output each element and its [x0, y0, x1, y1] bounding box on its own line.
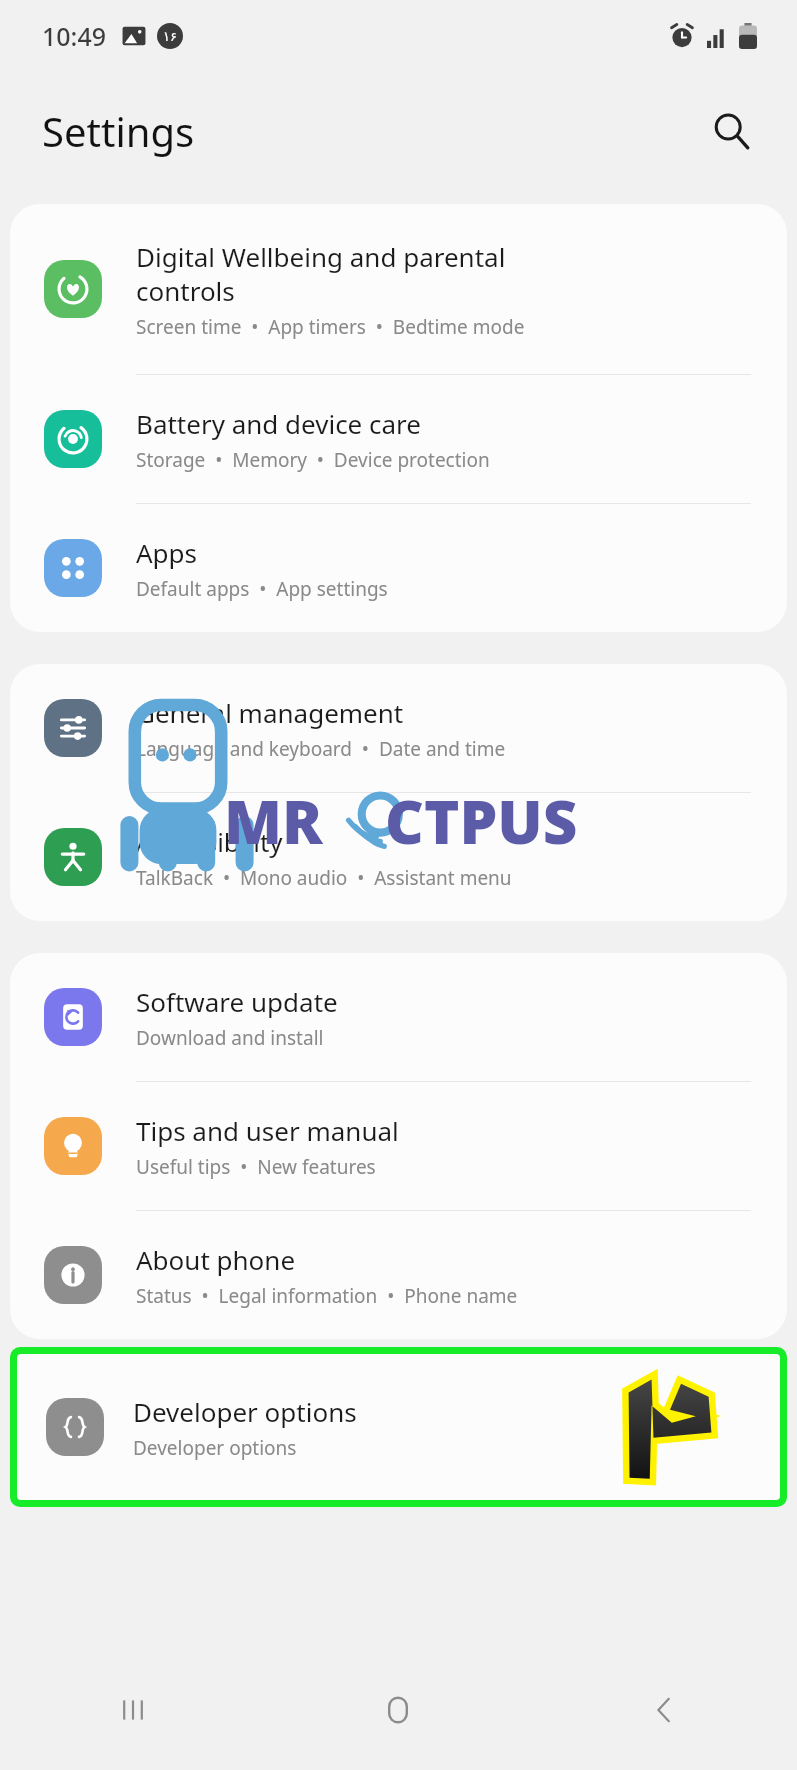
staticText: Default apps • App settings: [136, 576, 388, 602]
button[interactable]: General management: [10, 664, 787, 792]
staticText: Useful tips • New features: [136, 1154, 376, 1180]
button[interactable]: Recent apps: [0, 1650, 265, 1770]
button[interactable]: Software update: [10, 953, 787, 1081]
staticText: TalkBack • Mono audio • Assistant menu: [136, 865, 512, 891]
staticText: Settings: [42, 104, 195, 158]
staticText: Software update: [136, 984, 338, 1019]
staticText: Tips and user manual: [136, 1113, 399, 1148]
staticText: Developer options: [133, 1394, 357, 1429]
staticText: About phone: [136, 1242, 296, 1277]
button[interactable]: Apps: [10, 504, 787, 632]
button[interactable]: Digital Wellbeing and parental controls: [10, 204, 787, 374]
staticText: CTPUS: [385, 780, 578, 862]
button[interactable]: Developer options: [17, 1354, 780, 1500]
button[interactable]: Search: [699, 99, 763, 163]
button[interactable]: Battery and device care: [10, 375, 787, 503]
staticText: Accessibility: [136, 824, 283, 859]
staticText: General management: [136, 695, 404, 730]
button[interactable]: Tips and user manual: [10, 1082, 787, 1210]
button[interactable]: About phone: [10, 1211, 787, 1339]
staticText: 10:49: [42, 19, 107, 53]
staticText: Screen time • App timers • Bedtime mode: [136, 314, 525, 340]
staticText: Download and install: [136, 1025, 324, 1051]
button[interactable]: Back: [531, 1650, 797, 1770]
button[interactable]: Home: [265, 1650, 531, 1770]
staticText: Language and keyboard • Date and time: [136, 736, 506, 762]
staticText: ۱۶: [163, 29, 177, 44]
staticText: Status • Legal information • Phone name: [136, 1283, 518, 1309]
staticText: Developer options: [133, 1435, 297, 1461]
staticText: Digital Wellbeing and parental controls: [136, 239, 506, 308]
staticText: MR: [224, 780, 323, 862]
button[interactable]: Accessibility: [10, 793, 787, 921]
staticText: Storage • Memory • Device protection: [136, 447, 490, 473]
staticText: Apps: [136, 535, 198, 570]
staticText: Battery and device care: [136, 406, 421, 441]
